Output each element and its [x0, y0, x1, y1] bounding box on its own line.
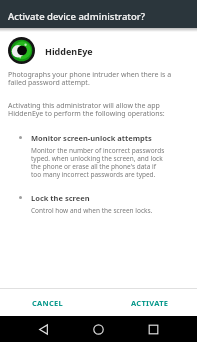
staticText: Photographs your phone intruder when the…: [8, 70, 172, 87]
staticText: Lock the screen: [31, 193, 90, 203]
staticText: Control how and when the screen locks.: [31, 206, 153, 215]
staticText: CANCEL: [32, 298, 64, 308]
staticText: Activate device administrator?: [8, 10, 146, 23]
staticText: Monitor screen-unlock attempts: [31, 133, 152, 143]
staticText: HiddenEye: [45, 45, 93, 57]
staticText: Monitor the number of incorrect password…: [31, 146, 165, 179]
staticText: ACTIVATE: [131, 298, 169, 308]
staticText: Activating this administrator will allow…: [8, 101, 165, 118]
